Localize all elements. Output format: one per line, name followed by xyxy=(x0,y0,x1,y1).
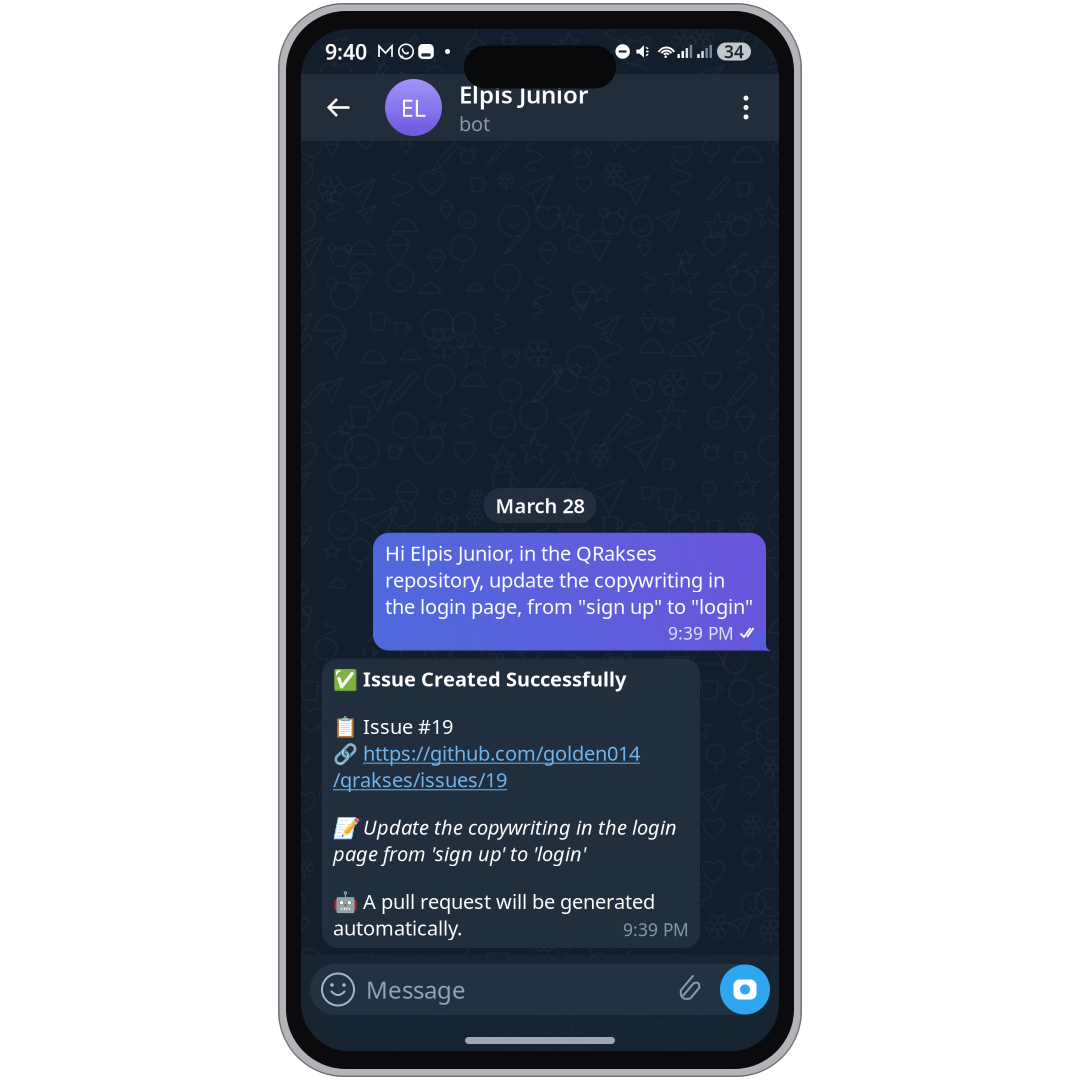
staticText: 🔗 xyxy=(333,740,363,766)
button[interactable]: Emoji xyxy=(310,964,366,1015)
button[interactable]: More options xyxy=(726,79,766,135)
staticText: Elpis Junior xyxy=(459,78,588,110)
staticText: 34 xyxy=(724,40,744,63)
staticText: 📝 Update the copywriting in the login pa… xyxy=(333,814,677,867)
staticText: Hi Elpis Junior, in the QRakses reposito… xyxy=(385,540,753,619)
staticText: https://github.com/golden014 xyxy=(363,740,640,766)
staticText: 9:39 PM xyxy=(623,918,689,941)
button[interactable]: EL xyxy=(385,78,588,137)
staticText: bot xyxy=(459,110,490,137)
staticText: 9:39 PM xyxy=(668,621,734,644)
staticText: Message xyxy=(366,974,466,1005)
button[interactable]: Back xyxy=(317,79,361,135)
staticText: 📋 Issue #19 xyxy=(333,713,453,740)
staticText: March 28 xyxy=(495,492,584,519)
staticText: /qrakses/issues/19 xyxy=(333,766,507,793)
button[interactable]: Attach xyxy=(666,964,714,1015)
staticText: EL xyxy=(400,92,426,123)
staticText: 9:40 xyxy=(325,37,367,66)
staticText: 🤖 A pull request will be generated autom… xyxy=(333,888,655,941)
staticText: ✅ Issue Created Successfully xyxy=(333,665,626,692)
button[interactable]: Camera xyxy=(720,964,770,1014)
